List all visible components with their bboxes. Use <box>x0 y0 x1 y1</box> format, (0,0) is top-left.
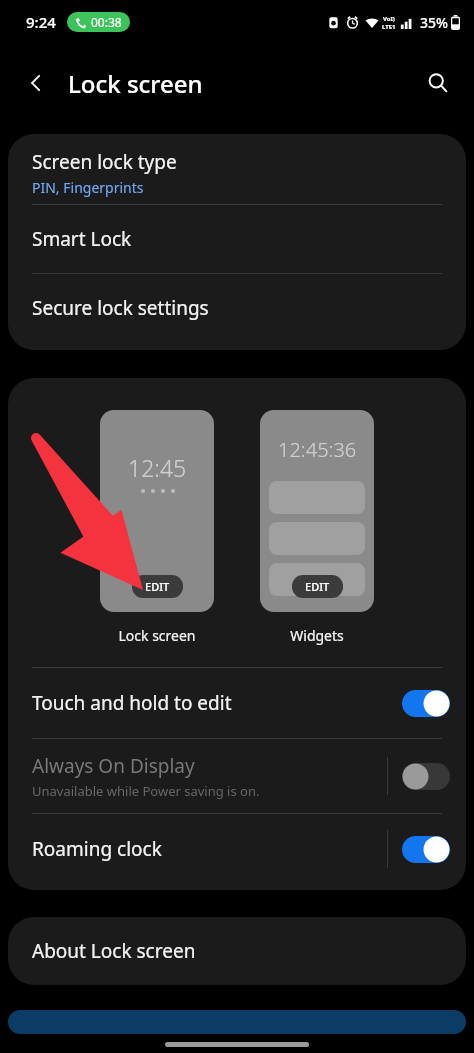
staticText: Secure lock settings <box>32 295 209 321</box>
button[interactable]: Touch and hold to edit <box>8 668 466 738</box>
staticText: Touch and hold to edit <box>32 690 232 716</box>
staticText: LTE1 <box>382 23 396 31</box>
button[interactable]: Smart Lock <box>8 205 466 273</box>
button[interactable]: 12:45 <box>100 410 214 612</box>
staticText: Widgets <box>290 626 344 645</box>
staticText: EDIT <box>145 579 170 594</box>
button[interactable]: 12:45:36 <box>260 410 374 612</box>
button[interactable]: About Lock screen <box>8 917 466 985</box>
staticText: 12:45:36 <box>278 436 357 463</box>
staticText: Smart Lock <box>32 226 132 252</box>
button[interactable]: Back <box>14 61 58 105</box>
staticText: Roaming clock <box>32 836 162 862</box>
staticText: VoI) <box>383 15 395 23</box>
button[interactable]: Roaming clock <box>8 814 466 884</box>
button[interactable]: Always On Display <box>8 739 466 813</box>
button[interactable]: EDIT <box>292 575 343 598</box>
button[interactable]: Screen lock type <box>8 142 466 204</box>
button[interactable]: Search <box>416 61 460 105</box>
staticText: Unavailable while Power saving is on. <box>32 782 260 800</box>
button[interactable] <box>8 1010 466 1034</box>
staticText: About Lock screen <box>32 938 196 964</box>
staticText: 35% <box>420 13 448 32</box>
staticText: 12:45 <box>128 452 187 483</box>
staticText: EDIT <box>305 579 330 594</box>
staticText: Always On Display <box>32 753 195 779</box>
staticText: Lock screen <box>68 67 203 100</box>
staticText: 00:38 <box>91 14 122 30</box>
button[interactable]: Secure lock settings <box>8 274 466 342</box>
staticText: Screen lock type <box>32 149 177 175</box>
staticText: Lock screen <box>118 626 196 645</box>
staticText: 9:24 <box>26 12 56 32</box>
button[interactable]: EDIT <box>132 575 183 598</box>
staticText: PIN, Fingerprints <box>32 178 144 197</box>
